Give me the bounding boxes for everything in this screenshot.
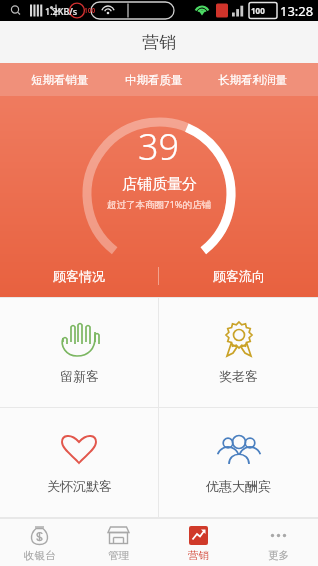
staticText: 店铺质量分 [122,175,197,194]
staticText: 中期看质量 [125,73,183,87]
button[interactable]: 关怀沉默客 [0,408,158,517]
staticText: 关怀沉默客 [47,478,112,494]
staticText: 1.2KB/s [45,5,78,17]
button[interactable]: 收银台 [0,519,79,566]
staticText: 100 [251,5,265,16]
staticText: 39 [138,122,180,171]
staticText: 顾客流向 [213,268,265,284]
button[interactable]: 长期看利润量 [214,67,291,93]
button[interactable]: 中期看质量 [121,67,187,93]
button[interactable]: 更多 [238,519,318,566]
staticText: 顾客情况 [53,268,105,284]
staticText: 100 [84,6,96,15]
button[interactable]: 优惠大酬宾 [159,408,318,517]
button[interactable]: 短期看销量 [27,67,93,93]
staticText: 收银台 [24,549,56,562]
staticText: 奖老客 [219,368,258,384]
staticText: 13:28 [280,2,314,20]
staticText: 营销 [142,32,176,53]
staticText: 短期看销量 [31,73,89,87]
staticText: 留新客 [60,368,99,384]
button[interactable]: 顾客流向 [159,255,318,297]
staticText: 更多 [268,549,289,562]
button[interactable]: 奖老客 [159,298,318,407]
button[interactable]: 顾客情况 [0,255,158,297]
staticText: 优惠大酬宾 [206,478,271,494]
button[interactable]: 管理 [79,519,158,566]
staticText: 超过了本商圈71%的店铺 [107,198,212,211]
staticText: 营销 [188,549,209,562]
staticText: 管理 [108,549,129,562]
staticText: 长期看利润量 [218,73,287,87]
button[interactable]: 留新客 [0,298,158,407]
button[interactable]: 营销 [158,519,238,566]
